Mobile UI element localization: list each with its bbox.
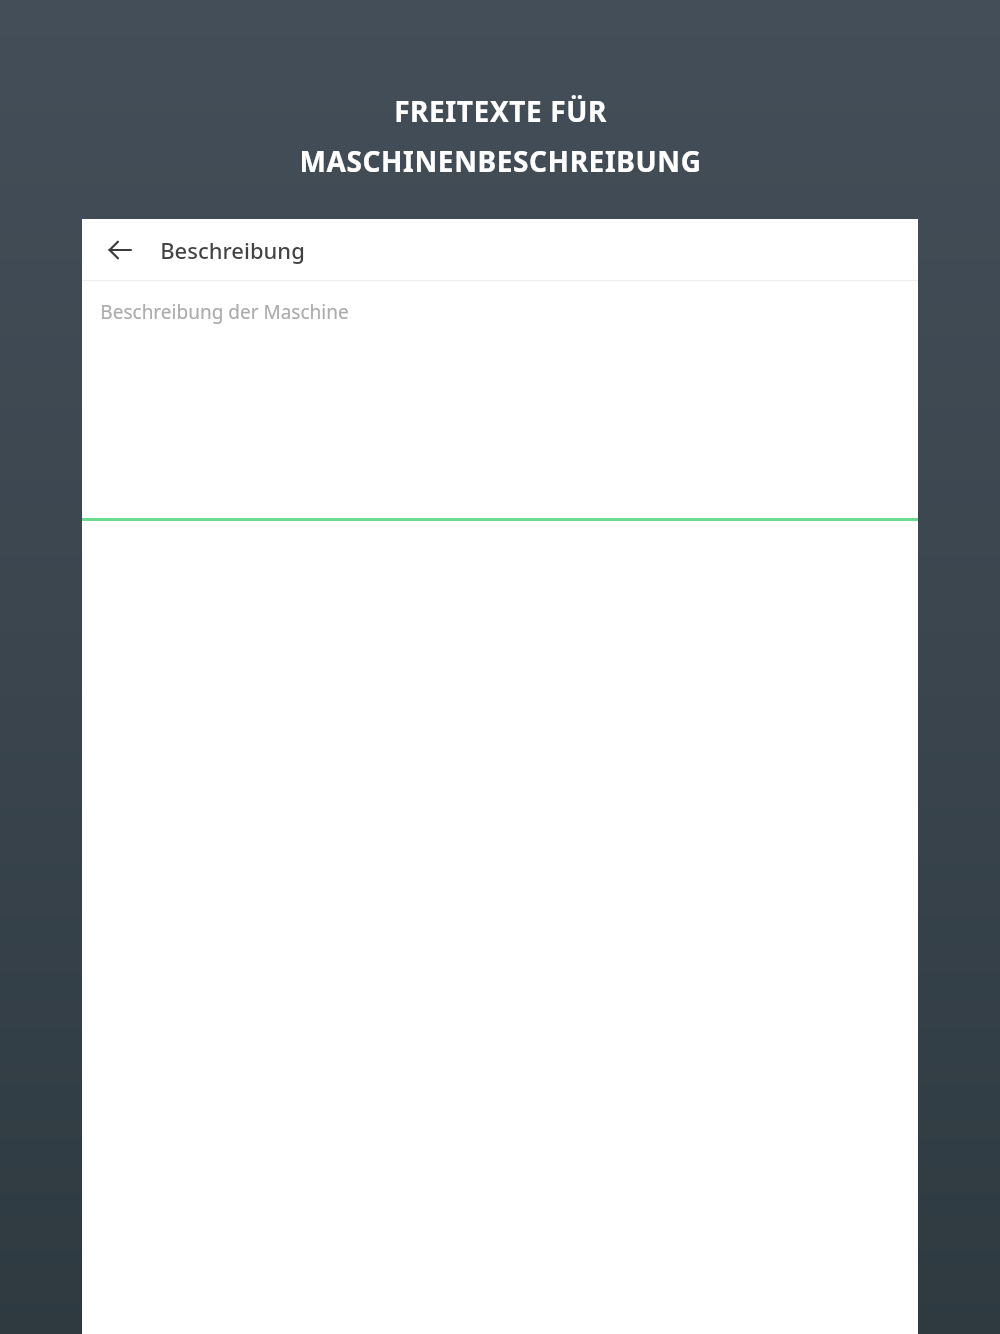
staticText: FREITEXTE FÜR [394, 92, 607, 130]
staticText: MASCHINENBESCHREIBUNG [299, 142, 702, 180]
button[interactable]: Back [96, 226, 144, 274]
staticText: Beschreibung der Maschine [100, 299, 349, 325]
staticText: Beschreibung [160, 235, 305, 265]
button[interactable]: Beschreibung der Maschine [82, 281, 918, 518]
